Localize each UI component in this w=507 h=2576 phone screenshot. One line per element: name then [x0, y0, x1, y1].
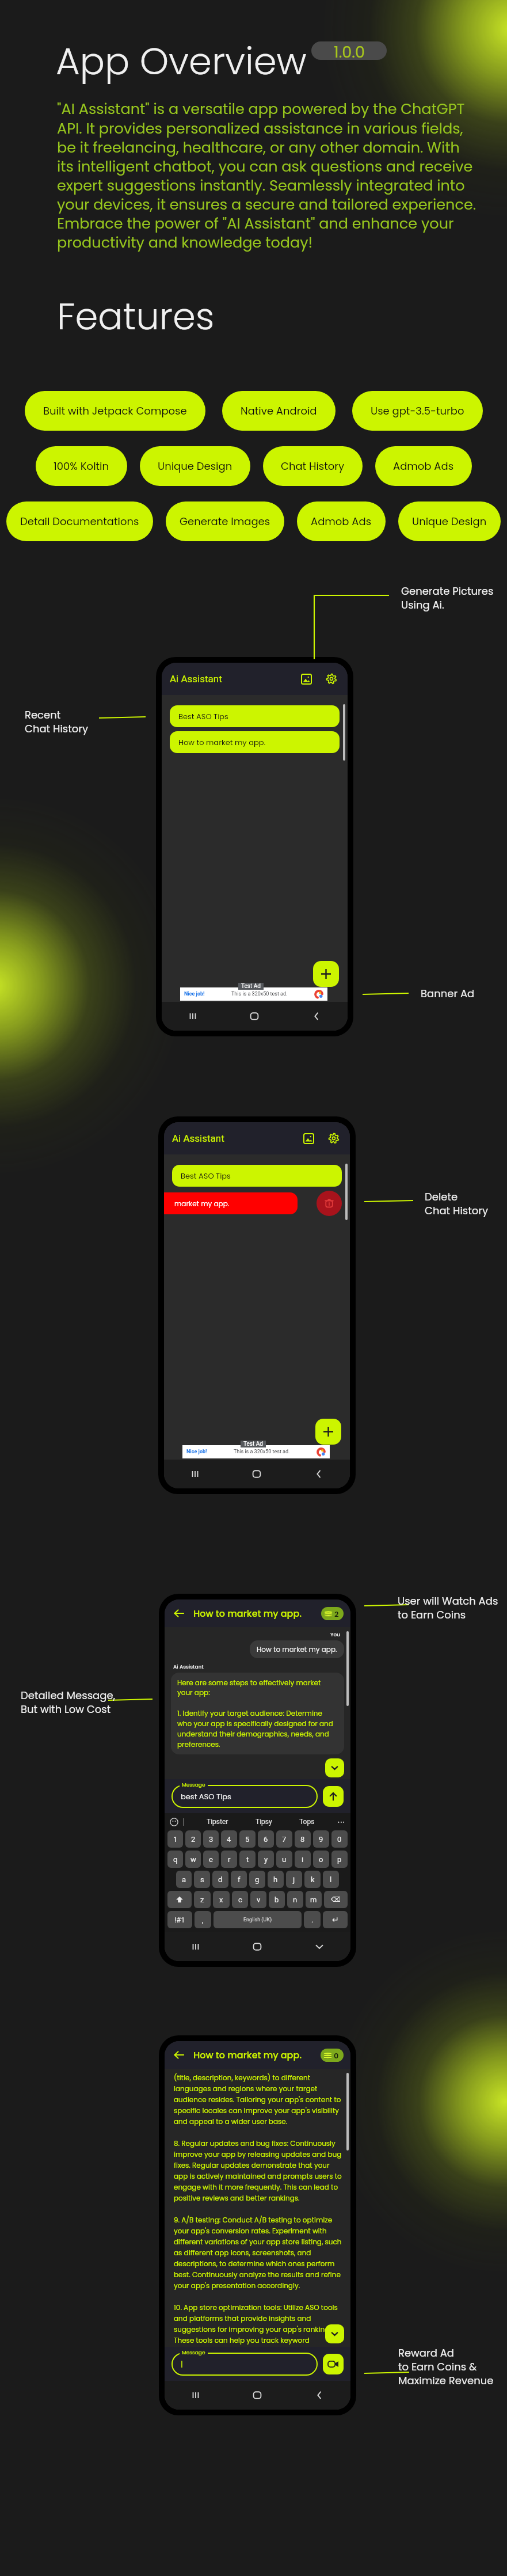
button[interactable]: Generate Images [166, 501, 284, 541]
button[interactable]: w [185, 1851, 201, 1868]
button[interactable]: Send [323, 1786, 344, 1807]
button[interactable]: e [203, 1851, 219, 1868]
button[interactable]: Enter [323, 1911, 348, 1928]
staticText: 1.0.0 [334, 41, 365, 60]
button[interactable]: Chat History [263, 446, 363, 486]
button[interactable]: z [194, 1891, 211, 1908]
button[interactable]: How to market my app. [170, 731, 340, 753]
button[interactable]: 2 [185, 1830, 201, 1848]
button[interactable]: u [276, 1851, 292, 1868]
button[interactable]: 3 [203, 1830, 219, 1848]
button[interactable]: v [250, 1891, 266, 1908]
staticText: best ASO Tips [181, 1791, 231, 1802]
button[interactable]: 0 [331, 1830, 348, 1848]
button[interactable]: Scroll to bottom [325, 2324, 344, 2343]
button[interactable]: Native Android [222, 391, 336, 431]
staticText: Admob Ads [393, 459, 454, 473]
button[interactable]: Best ASO Tips [170, 705, 340, 727]
button[interactable]: 4 [221, 1830, 237, 1848]
button[interactable]: New chat [313, 961, 339, 987]
button[interactable]: Settings [326, 1130, 342, 1146]
staticText: User will Watch Ads to Earn Coins [398, 1594, 498, 1622]
button[interactable]: Delete [317, 1191, 342, 1216]
button[interactable]: d [212, 1871, 228, 1888]
staticText: h [273, 1875, 278, 1884]
button[interactable]: , [195, 1911, 211, 1928]
button[interactable]: Admob Ads [297, 501, 386, 541]
button[interactable]: f [231, 1871, 247, 1888]
button[interactable]: Best ASO Tips [172, 1165, 342, 1187]
staticText: Detailed Message, But with Low Cost [21, 1688, 116, 1716]
button[interactable]: New chat [315, 1419, 341, 1445]
button[interactable]: 7 [276, 1830, 292, 1848]
staticText: 4 [227, 1835, 231, 1844]
button[interactable]: Settings [323, 671, 340, 687]
staticText: b [275, 1895, 279, 1904]
button[interactable]: j [286, 1871, 302, 1888]
staticText: y [264, 1855, 268, 1864]
button[interactable]: c [232, 1891, 248, 1908]
button[interactable]: o [313, 1851, 329, 1868]
button[interactable]: i [295, 1851, 311, 1868]
staticText: o [319, 1855, 323, 1864]
button[interactable]: h [268, 1871, 284, 1888]
button[interactable]: b [269, 1891, 285, 1908]
button[interactable]: Back [171, 1606, 186, 1621]
button[interactable]: q [167, 1851, 183, 1868]
button[interactable]: Unique Design [140, 446, 250, 486]
staticText: Use gpt-3.5-turbo [371, 404, 464, 418]
button[interactable]: m [306, 1891, 322, 1908]
staticText: This is a 320x50 test ad. [234, 1449, 290, 1455]
button[interactable]: Built with Jetpack Compose [25, 391, 205, 431]
button[interactable]: Detail Documentations [6, 501, 153, 541]
staticText: How to market my app. [178, 737, 266, 747]
staticText: Recent Chat History [25, 708, 89, 736]
button[interactable]: 0 [321, 2049, 344, 2062]
button[interactable]: . [304, 1911, 321, 1928]
button[interactable]: g [249, 1871, 265, 1888]
staticText: l [330, 1875, 332, 1884]
staticText: English (UK) [243, 1917, 272, 1923]
staticText: Generate Images [180, 514, 270, 529]
button[interactable]: s [194, 1871, 210, 1888]
button[interactable]: 1.0.0 [311, 41, 387, 60]
button[interactable]: 8 [295, 1830, 311, 1848]
button[interactable]: Unique Design [398, 501, 501, 541]
button[interactable]: English (UK) [214, 1911, 302, 1928]
staticText: v [257, 1895, 261, 1904]
button[interactable]: 6 [258, 1830, 274, 1848]
staticText: Native Android [241, 404, 317, 418]
button[interactable]: a [176, 1871, 192, 1888]
button[interactable]: 1 [167, 1830, 183, 1848]
button[interactable]: Back [171, 2047, 186, 2062]
staticText: p [337, 1855, 342, 1864]
button[interactable]: 5 [239, 1830, 256, 1848]
button[interactable]: 100% Koltin [36, 446, 127, 486]
staticText: m [310, 1895, 317, 1904]
button[interactable]: 9 [313, 1830, 329, 1848]
staticText: Test Ad [243, 1441, 263, 1447]
button[interactable]: l [323, 1871, 339, 1888]
button[interactable]: t [239, 1851, 256, 1868]
staticText: 9 [319, 1835, 323, 1844]
button[interactable]: k [304, 1871, 321, 1888]
button[interactable]: x [213, 1891, 230, 1908]
button[interactable]: Backspace [324, 1891, 348, 1908]
staticText: j [293, 1875, 295, 1884]
button[interactable]: n [287, 1891, 303, 1908]
button[interactable]: 2 [321, 1607, 344, 1620]
staticText: 0 [334, 2050, 339, 2061]
staticText: | [181, 2359, 183, 2369]
button[interactable]: Generate image [298, 671, 314, 687]
button[interactable]: Generate image [300, 1130, 317, 1146]
button[interactable]: Watch reward ad [323, 2354, 344, 2374]
button[interactable]: !#1 [167, 1911, 192, 1928]
button[interactable]: p [331, 1851, 348, 1868]
staticText: Features [57, 291, 215, 343]
button[interactable]: r [221, 1851, 237, 1868]
button[interactable]: Scroll to bottom [325, 1758, 344, 1777]
button[interactable]: Admob Ads [375, 446, 472, 486]
button[interactable]: Use gpt-3.5-turbo [352, 391, 483, 431]
button[interactable]: y [258, 1851, 274, 1868]
button[interactable]: Shift [167, 1891, 192, 1908]
